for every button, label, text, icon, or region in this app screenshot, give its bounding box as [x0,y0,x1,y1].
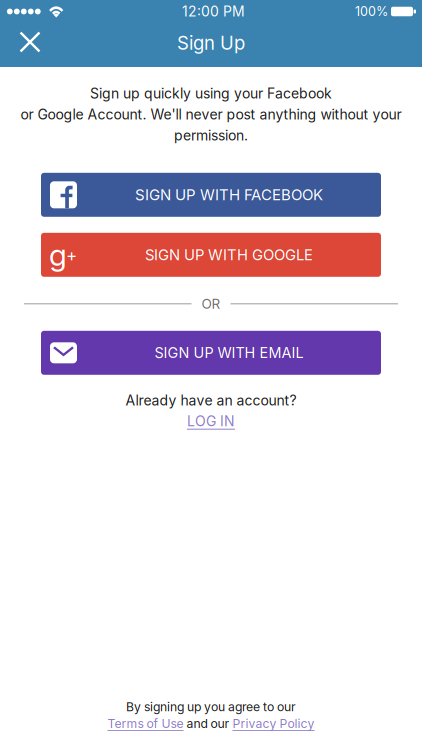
staticText: Privacy Policy [232,716,314,731]
button[interactable]: SIGN UP WITH FACEBOOK [41,173,381,217]
staticText: Already have an account? [125,392,296,409]
button[interactable]: SIGN UP WITH EMAIL [41,331,381,375]
staticText: SIGN UP WITH FACEBOOK [135,186,323,204]
staticText: Sign Up [177,32,245,54]
button[interactable]: LOG IN [187,409,235,430]
staticText: SIGN UP WITH EMAIL [154,344,303,361]
button[interactable]: Privacy Policy [232,716,314,731]
staticText: Sign up quickly using your Facebook [90,85,332,102]
staticText: g [49,237,67,273]
staticText: By signing up you agree to our [126,699,296,714]
staticText: permission. [174,127,248,144]
staticText: LOG IN [187,413,235,430]
staticText: or Google Account. We'll never post anyt… [20,106,401,123]
staticText: and our [183,716,232,731]
staticText: Terms of Use [107,716,183,731]
button[interactable]: SIGN UP WITH GOOGLE [41,233,381,277]
staticText: + [66,244,77,265]
button[interactable]: Terms of Use [107,716,183,731]
staticText: 100% [355,4,388,19]
staticText: SIGN UP WITH GOOGLE [145,246,313,264]
staticText: 12:00 PM [182,3,245,20]
button[interactable]: Close [8,23,52,67]
staticText: OR [201,296,220,312]
